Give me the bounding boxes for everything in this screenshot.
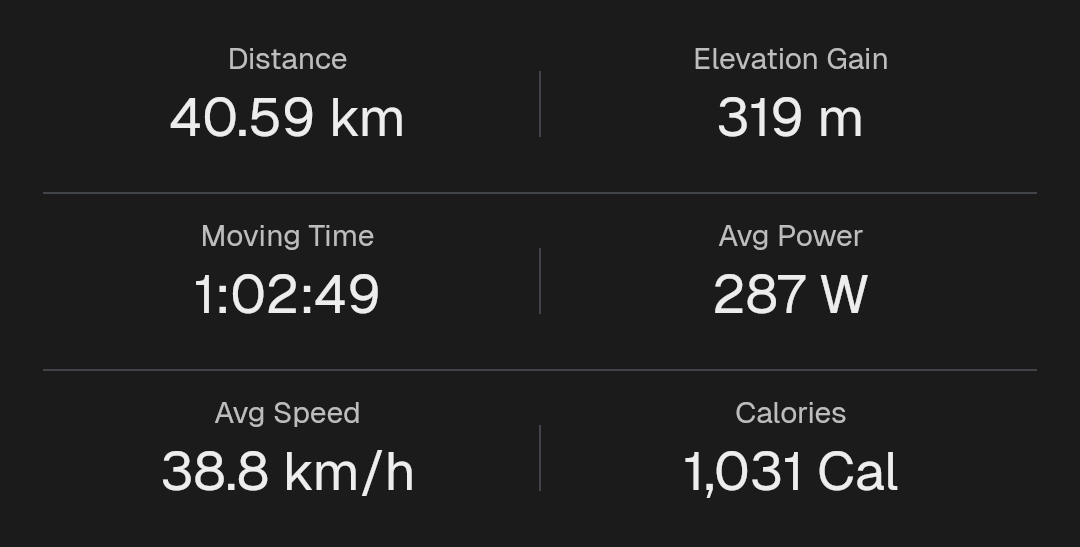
- button[interactable]: Elevation Gain: [539, 0, 1042, 192]
- button[interactable]: Avg Speed: [36, 371, 539, 547]
- staticText: 40.59 km: [169, 82, 406, 152]
- staticText: Avg Speed: [214, 393, 361, 432]
- button[interactable]: Calories: [539, 371, 1042, 547]
- staticText: 287 W: [712, 259, 870, 329]
- staticText: Moving Time: [200, 216, 375, 255]
- staticText: 319 m: [716, 82, 865, 152]
- staticText: 1,031 Cal: [683, 436, 899, 506]
- button[interactable]: Moving Time: [36, 194, 539, 369]
- button[interactable]: Distance: [36, 0, 539, 192]
- button[interactable]: Avg Power: [539, 194, 1042, 369]
- staticText: Elevation Gain: [693, 39, 889, 78]
- staticText: Distance: [227, 39, 348, 78]
- staticText: 38.8 km/h: [160, 436, 416, 506]
- staticText: Avg Power: [718, 216, 864, 255]
- staticText: 1:02:49: [194, 259, 381, 329]
- staticText: Calories: [735, 393, 847, 432]
